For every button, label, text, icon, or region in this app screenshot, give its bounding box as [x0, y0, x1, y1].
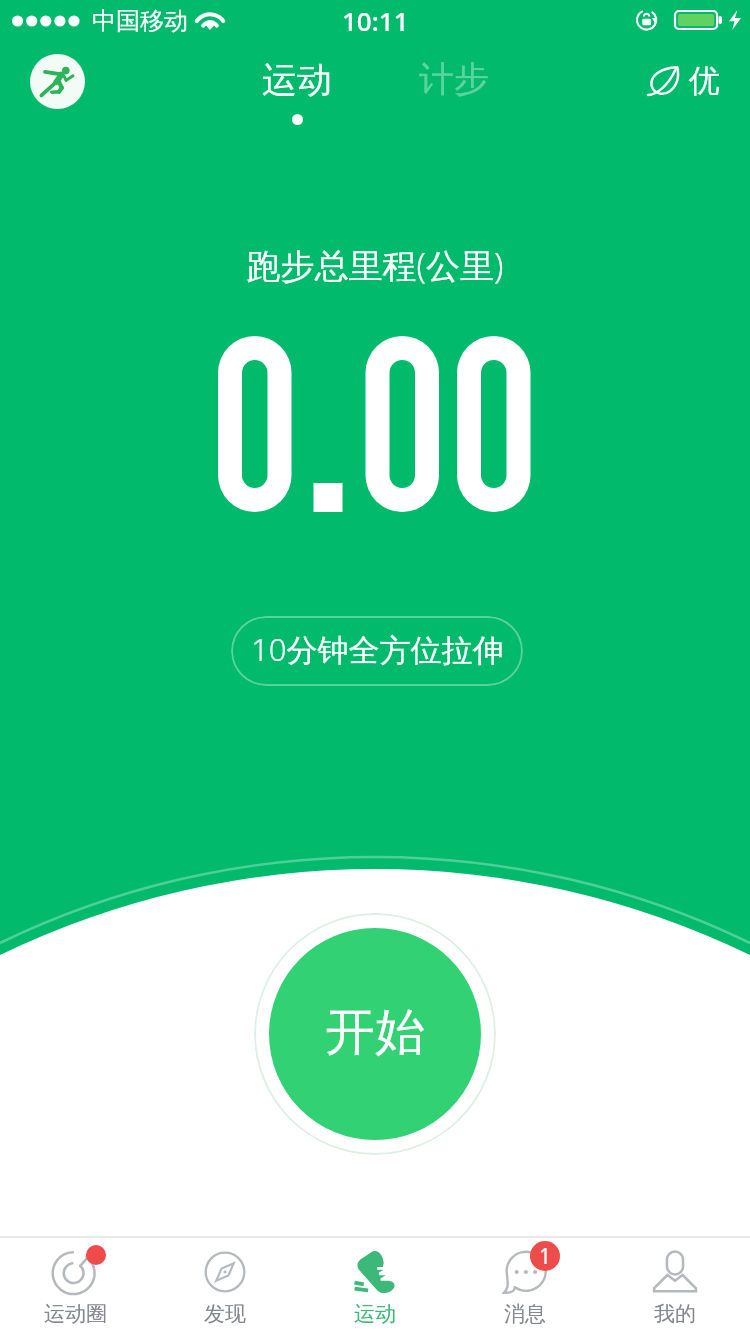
button[interactable]: Profile	[30, 54, 85, 109]
staticText: 10:11	[342, 3, 409, 38]
staticText: 消息	[504, 1301, 546, 1327]
staticText: 发现	[204, 1301, 246, 1327]
staticText: 优	[689, 61, 720, 100]
button[interactable]: 优	[647, 61, 720, 100]
staticText: 运动	[354, 1301, 396, 1327]
staticText: 开始	[325, 1001, 425, 1064]
staticText: 我的	[654, 1301, 696, 1327]
button[interactable]: 运动	[262, 58, 332, 125]
button[interactable]: 开始	[254, 913, 496, 1155]
button[interactable]: 运动	[300, 1238, 450, 1334]
button[interactable]: 1	[450, 1238, 600, 1334]
staticText: 中国移动	[92, 6, 188, 36]
button[interactable]: 发现	[150, 1238, 300, 1334]
staticText: 跑步总里程(公里)	[0, 242, 750, 288]
staticText: 10分钟全方位拉伸	[251, 628, 504, 670]
button[interactable]: 计步	[419, 57, 489, 101]
staticText: 运动圈	[44, 1301, 107, 1327]
button[interactable]: 10分钟全方位拉伸	[231, 616, 523, 686]
button[interactable]: 运动圈	[0, 1238, 150, 1334]
button[interactable]: 我的	[600, 1238, 750, 1334]
staticText: 1	[539, 1242, 552, 1271]
staticText: 运动	[262, 58, 332, 102]
